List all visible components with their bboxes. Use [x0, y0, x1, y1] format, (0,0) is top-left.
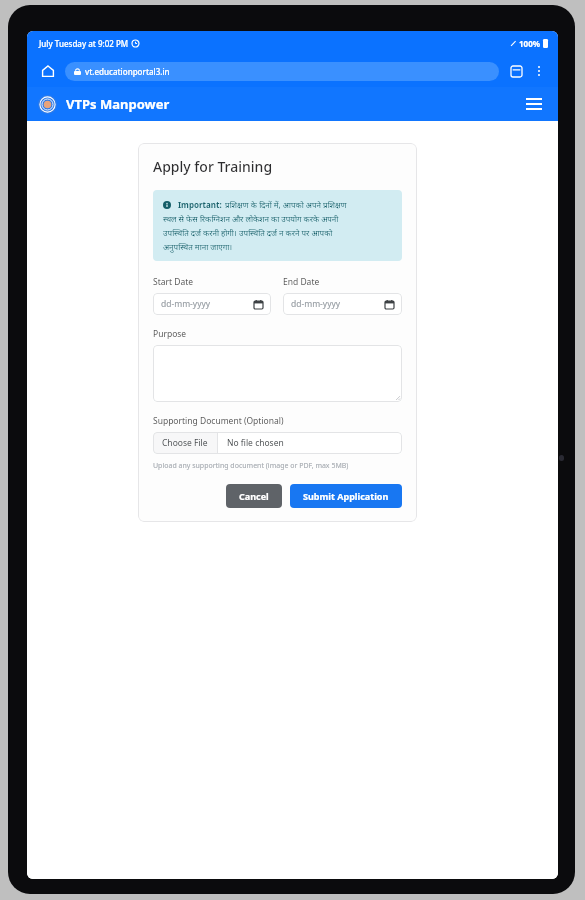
button[interactable]: Submit Application [290, 484, 402, 508]
staticText: Cancel [239, 490, 269, 502]
button[interactable]: dd-mm-yyyy [153, 293, 271, 315]
staticText: उपस्थिति दर्ज करनी होगी। उपस्थिति दर्ज न… [163, 227, 333, 238]
staticText: VTPs Manpower [66, 95, 170, 113]
staticText: End Date [283, 276, 320, 288]
staticText: अनुपस्थित माना जाएगा। [163, 241, 233, 252]
staticText: dd-mm-yyyy [161, 298, 211, 310]
button[interactable]: Choose File [153, 432, 402, 454]
button[interactable]: Cancel [226, 484, 282, 508]
staticText: Submit Application [303, 490, 389, 502]
button[interactable]: Home [37, 60, 59, 82]
button[interactable]: More options [530, 62, 548, 80]
staticText: Purpose [153, 328, 187, 340]
staticText: Upload any supporting document (image or… [153, 461, 349, 471]
button[interactable] [153, 345, 402, 402]
staticText: vt.educationportal3.in [85, 66, 170, 77]
staticText: Start Date [153, 276, 194, 288]
staticText: प्रशिक्षण के दिनों में, आपको अपने प्रशिक… [225, 199, 347, 210]
button[interactable]: Menu [521, 91, 547, 117]
staticText: Choose File [162, 437, 208, 449]
staticText: Important: [178, 199, 222, 210]
staticText: No file chosen [227, 437, 284, 449]
staticText: dd-mm-yyyy [291, 298, 341, 310]
staticText: July Tuesday at 9:02 PM [39, 38, 129, 49]
staticText: स्थल से फेस रिकग्निशन और लोकेशन का उपयोग… [163, 213, 339, 224]
staticText: Supporting Document (Optional) [153, 415, 284, 427]
button[interactable]: vt.educationportal3.in [65, 62, 499, 81]
button[interactable]: dd-mm-yyyy [283, 293, 402, 315]
button[interactable]: Tabs [506, 61, 526, 81]
staticText: Apply for Training [153, 157, 273, 176]
staticText: 100% [519, 38, 540, 49]
